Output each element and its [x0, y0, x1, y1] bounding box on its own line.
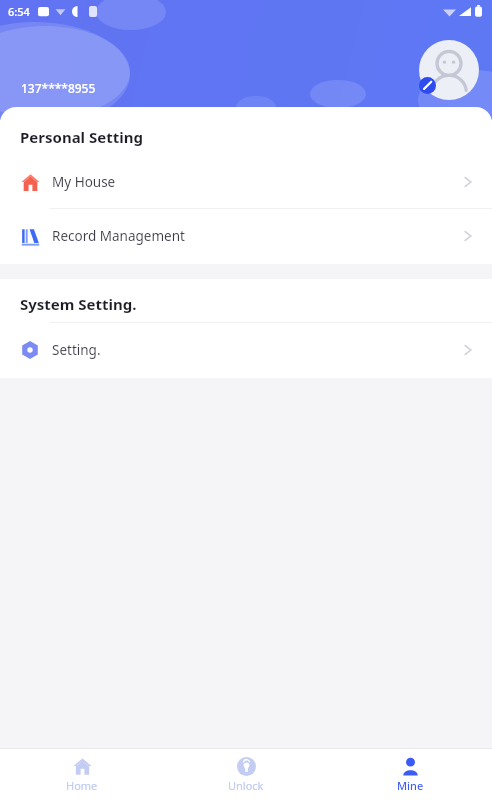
button[interactable]: Unlock	[164, 749, 328, 800]
staticText: My House	[52, 173, 116, 191]
button[interactable]: Home	[0, 749, 164, 800]
staticText: 137****8955	[21, 80, 96, 96]
staticText: Personal Setting	[20, 127, 143, 147]
button[interactable]: Record Management	[0, 209, 492, 262]
staticText: 6:54	[8, 4, 30, 19]
button[interactable]: My House	[0, 155, 492, 208]
staticText: Home	[66, 778, 98, 793]
button[interactable]: Edit profile	[419, 40, 479, 100]
staticText: System Setting.	[20, 294, 137, 314]
staticText: Setting.	[52, 341, 101, 359]
staticText: Mine	[397, 778, 424, 793]
button[interactable]: Setting.	[0, 323, 492, 376]
staticText: Unlock	[228, 778, 264, 793]
button[interactable]: Mine	[328, 749, 492, 800]
staticText: Record Management	[52, 227, 185, 245]
